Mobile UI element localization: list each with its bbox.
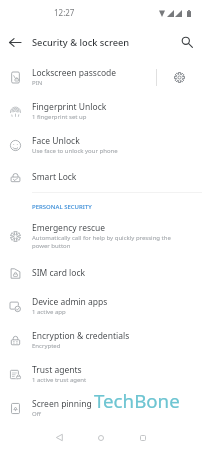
staticText: PERSONAL SECURITY	[32, 203, 92, 211]
button[interactable]: Lockscreen passcode settings	[157, 60, 202, 94]
staticText: Use face to unlock your phone	[32, 147, 118, 155]
button[interactable]: Face Unlock	[0, 128, 202, 162]
staticText: 1 active trust agent	[32, 376, 87, 384]
button[interactable]: Lockscreen passcode	[0, 60, 202, 94]
staticText: Trust agents	[32, 364, 82, 376]
staticText: Automatically call for help by quickly p…	[32, 234, 174, 250]
staticText: Emergency rescue	[32, 222, 106, 234]
button[interactable]: Encryption & credentials	[0, 323, 202, 357]
staticText: Smart Lock	[32, 171, 77, 183]
staticText: Off	[32, 410, 41, 418]
button[interactable]: SIM card lock	[0, 257, 202, 289]
staticText: Face Unlock	[32, 135, 80, 147]
button[interactable]: Recent apps	[130, 425, 156, 450]
staticText: TechBone	[94, 388, 180, 413]
button[interactable]: Back	[4, 31, 26, 53]
button[interactable]: Trust agents	[0, 357, 202, 391]
button[interactable]: Emergency rescue	[0, 215, 202, 257]
staticText: Screen pinning	[32, 398, 92, 410]
staticText: PIN	[32, 79, 43, 87]
button[interactable]: Back	[46, 425, 72, 450]
button[interactable]: Home	[88, 425, 114, 450]
staticText: Security & lock screen	[32, 36, 130, 49]
button[interactable]: Fingerprint Unlock	[0, 94, 202, 128]
button[interactable]: Search	[176, 31, 198, 53]
button[interactable]: Smart Lock	[0, 162, 202, 192]
staticText: 1 fingerprint set up	[32, 113, 87, 121]
staticText: 1 active app	[32, 308, 66, 316]
staticText: Encrypted	[32, 342, 61, 350]
staticText: Fingerprint Unlock	[32, 101, 107, 113]
button[interactable]: Screen pinning	[0, 391, 202, 425]
staticText: 12:27	[54, 7, 75, 18]
staticText: SIM card lock	[32, 267, 86, 279]
staticText: Device admin apps	[32, 296, 108, 308]
button[interactable]: Device admin apps	[0, 289, 202, 323]
staticText: Encryption & credentials	[32, 330, 130, 342]
staticText: Lockscreen passcode	[32, 67, 117, 79]
